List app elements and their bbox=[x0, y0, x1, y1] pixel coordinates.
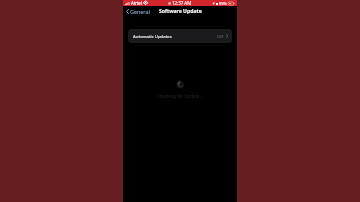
staticText: Automatic Updates bbox=[133, 33, 172, 39]
staticText: Checking for Update… bbox=[157, 93, 203, 99]
staticText: 12:37 AM bbox=[172, 0, 192, 6]
staticText: Off bbox=[217, 33, 224, 39]
staticText: 55% bbox=[219, 1, 227, 6]
button[interactable]: Automatic Updates bbox=[128, 29, 232, 43]
staticText: Software Update bbox=[159, 8, 202, 15]
button[interactable]: Back to General bbox=[123, 6, 153, 17]
staticText: Airtel bbox=[131, 0, 142, 6]
staticText: General bbox=[130, 8, 150, 15]
